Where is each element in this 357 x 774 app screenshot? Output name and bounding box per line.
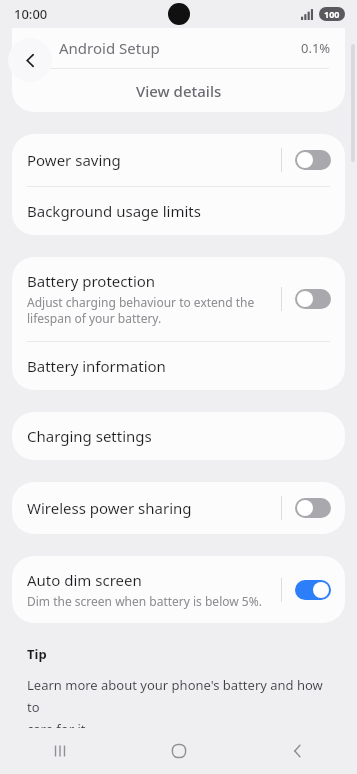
button[interactable]: Back xyxy=(8,38,52,82)
staticText: Battery protection xyxy=(27,271,156,291)
button[interactable]: View details xyxy=(12,69,345,112)
button[interactable]: Switch off xyxy=(295,150,331,170)
button[interactable]: Battery information xyxy=(12,342,345,390)
staticText: Battery information xyxy=(27,356,166,376)
staticText: Charging settings xyxy=(27,426,152,446)
staticText: Auto dim screen xyxy=(27,570,142,590)
button[interactable]: Auto dim screen xyxy=(12,556,345,623)
staticText: Power saving xyxy=(27,150,121,170)
button[interactable]: Power saving xyxy=(12,134,345,186)
staticText: Tip xyxy=(27,645,47,663)
staticText: Background usage limits xyxy=(27,201,201,221)
staticText: 10:00 xyxy=(14,5,48,23)
staticText: Wireless power sharing xyxy=(27,498,192,518)
staticText: View details xyxy=(136,81,222,101)
staticText: 0.1% xyxy=(301,39,331,57)
button[interactable]: Wireless power sharing xyxy=(12,482,345,534)
staticText: Dim the screen when battery is below 5%. xyxy=(27,593,262,609)
staticText: Adjust charging behaviour to extend the … xyxy=(27,294,255,327)
button[interactable]: Android Setup xyxy=(12,28,345,68)
button[interactable]: Switch off xyxy=(295,498,331,518)
button[interactable]: Battery protection xyxy=(12,257,345,341)
button[interactable]: Charging settings xyxy=(12,412,345,460)
button[interactable]: Background usage limits xyxy=(12,187,345,235)
staticText: 100 xyxy=(324,8,340,20)
button[interactable]: Back xyxy=(238,728,357,774)
button[interactable]: Switch on xyxy=(295,580,331,600)
button[interactable]: Switch off xyxy=(295,289,331,309)
button[interactable]: Home xyxy=(119,728,238,774)
staticText: Android Setup xyxy=(59,38,301,58)
button[interactable]: Recent apps xyxy=(0,728,119,774)
staticText: Learn more about your phone's battery an… xyxy=(27,676,330,728)
